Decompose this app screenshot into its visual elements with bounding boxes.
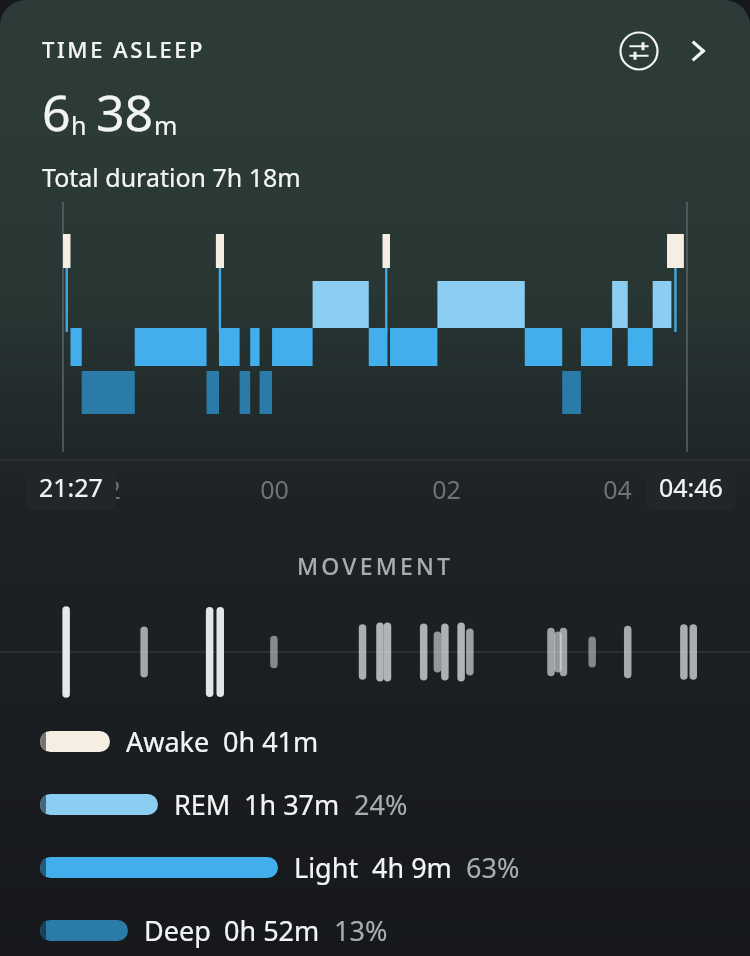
staticText: 1h 37m [244,786,340,823]
staticText: 21:27 [39,470,103,504]
staticText: Light [294,849,359,886]
staticText: 04:46 [659,470,723,504]
staticText: 04 [603,472,632,506]
staticText: Awake [126,723,210,760]
staticText: 6 [42,78,71,146]
staticText: 4h 9m [372,849,452,886]
button[interactable]: Adjust sleep settings [616,28,662,74]
staticText: Deep [144,912,211,949]
button[interactable]: Light [40,849,710,886]
staticText: 00 [260,472,289,506]
staticText: 38 [96,78,154,146]
button[interactable]: 04:46 [659,470,723,504]
button[interactable]: Deep [40,912,710,949]
staticText: 0h 52m [224,912,320,949]
button[interactable]: Open sleep details [676,29,720,73]
button[interactable]: Awake [40,723,710,760]
staticText: 22 [92,472,121,506]
staticText: h [71,108,87,142]
staticText: 0h 41m [223,723,319,760]
staticText: REM [174,786,231,823]
staticText: m [154,108,178,142]
staticText: 02 [432,472,461,506]
staticText: 63% [466,849,520,886]
staticText: 24% [354,786,408,823]
button[interactable]: 21:27 [39,470,103,504]
staticText: Total duration 7h 18m [42,160,301,194]
staticText: MOVEMENT [297,550,454,581]
button[interactable]: REM [40,786,710,823]
staticText: TIME ASLEEP [42,34,206,64]
staticText: 13% [334,912,388,949]
